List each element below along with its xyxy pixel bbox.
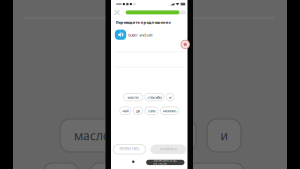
staticText: butter and salt [128,32,152,37]
staticText: и [169,94,171,100]
staticText: спасибо [147,94,161,100]
button[interactable]: чай [120,107,131,114]
button[interactable]: спасибо [145,93,164,101]
staticText: Переведите предложение [116,20,171,25]
staticText: ПРОВЕРИТЬ [160,147,177,151]
staticText: ЗАПИСАНО В AZ RECORDER [153,159,177,166]
button[interactable]: ПРОПУСТИТЬ [113,144,145,154]
button[interactable]: и [166,93,174,101]
button[interactable]: молоко [160,107,179,114]
staticText: ПРОПУСТИТЬ [119,147,139,151]
button[interactable]: соль [145,107,158,114]
button[interactable]: Play sentence audio [115,30,126,40]
button[interactable]: Close lesson [113,8,121,17]
button[interactable]: ПРОВЕРИТЬ [150,144,186,154]
staticText: масло [128,94,139,100]
staticText: масло [74,127,110,143]
staticText: и [220,127,227,143]
staticText: чай [122,108,128,113]
staticText: молоко [163,108,176,113]
staticText: да [136,108,140,113]
staticText: соль [148,108,156,113]
button[interactable]: масло [123,93,143,101]
button[interactable]: да [133,107,143,114]
